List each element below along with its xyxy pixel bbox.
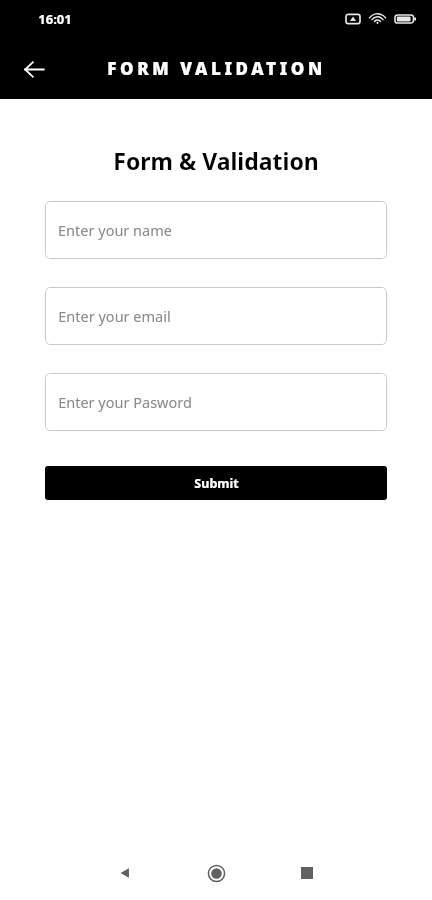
button[interactable]: Back bbox=[102, 850, 148, 896]
staticText: Submit bbox=[194, 475, 239, 492]
staticText: Form & Validation bbox=[113, 145, 319, 176]
button[interactable]: Recent apps bbox=[284, 850, 330, 896]
staticText: FORM VALIDATION bbox=[107, 57, 326, 80]
staticText: Enter your email bbox=[58, 306, 171, 326]
staticText: 16:01 bbox=[38, 10, 72, 28]
button[interactable]: Enter your name bbox=[45, 201, 387, 259]
staticText: Enter your name bbox=[58, 220, 172, 240]
button[interactable]: Submit bbox=[45, 466, 387, 500]
button[interactable]: Home bbox=[193, 850, 239, 896]
button[interactable]: Enter your Pasword bbox=[45, 373, 387, 431]
button[interactable]: Back bbox=[14, 49, 54, 89]
button[interactable]: Enter your email bbox=[45, 287, 387, 345]
staticText: Enter your Pasword bbox=[58, 392, 192, 412]
